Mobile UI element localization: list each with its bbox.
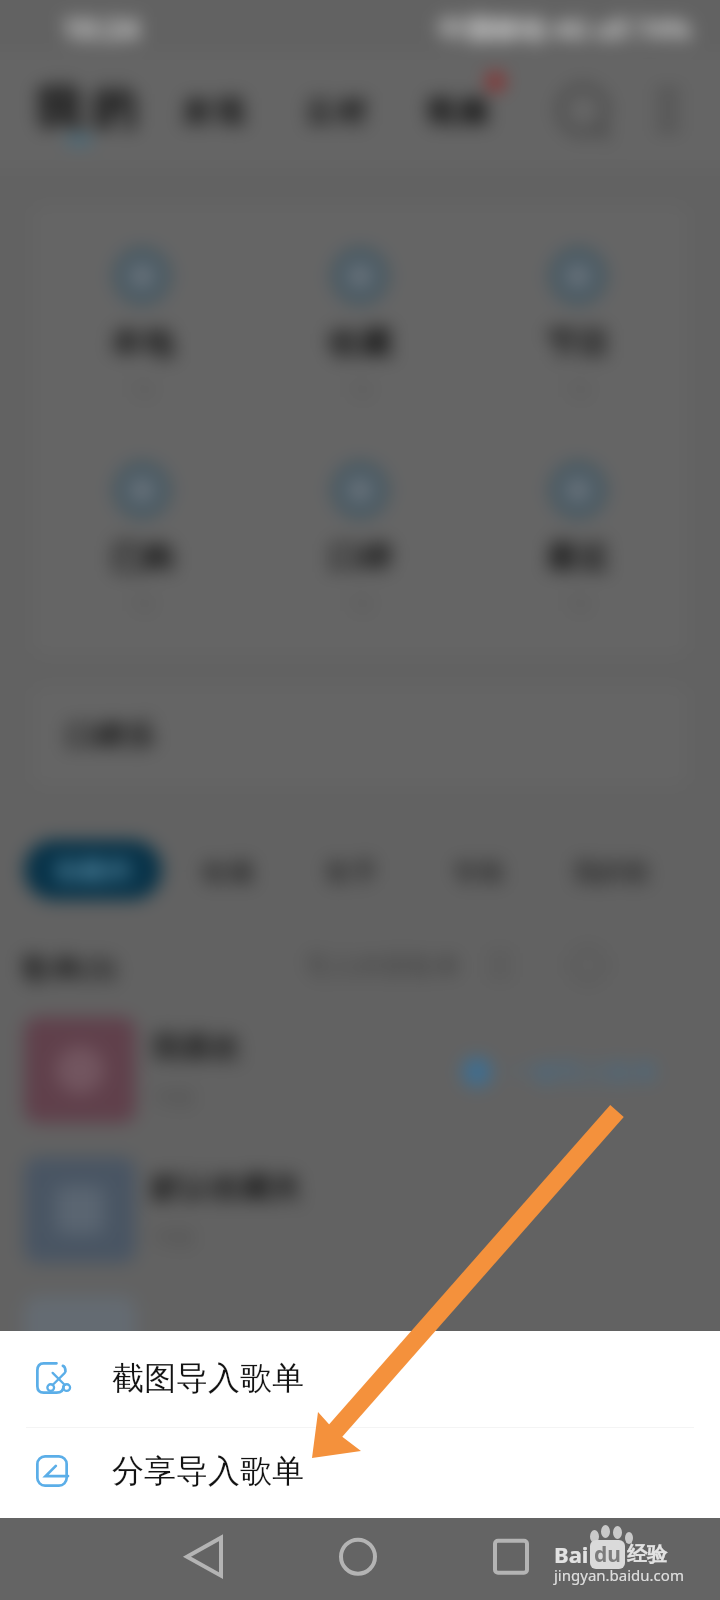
button[interactable]: Back xyxy=(0,1518,240,1600)
button[interactable]: 收藏 xyxy=(186,842,270,903)
staticText: 口碑 xyxy=(328,537,392,577)
staticText: 云村 xyxy=(303,93,369,131)
button[interactable]: Recent apps xyxy=(480,1518,720,1600)
staticText: 歌手 xyxy=(326,856,378,889)
button[interactable]: 专辑 xyxy=(436,842,520,903)
staticText: 节目 xyxy=(546,323,610,363)
button[interactable]: 视频 xyxy=(412,66,502,158)
staticText: 口碑乐 xyxy=(65,717,155,755)
button[interactable]: 我的歌 xyxy=(557,842,667,903)
button[interactable]: 我喜欢 xyxy=(0,1000,720,1140)
button[interactable]: 默认收藏夹 xyxy=(0,1140,720,1280)
staticText: 最近 xyxy=(546,537,610,577)
staticText: 创建的 xyxy=(54,854,132,887)
button[interactable]: 云村 xyxy=(291,66,381,158)
button[interactable]: 截图导入歌单 xyxy=(0,1331,720,1425)
staticText: Bai xyxy=(554,1539,589,1569)
staticText: 收藏 xyxy=(328,323,392,363)
button[interactable]: 口碑 xyxy=(251,419,469,633)
button[interactable]: 口碑乐 xyxy=(33,686,687,786)
staticText: 经验 xyxy=(627,1542,667,1567)
staticText: du xyxy=(594,1540,621,1569)
staticText: 收藏 xyxy=(202,856,254,889)
staticText: jingyan.baidu.com xyxy=(554,1565,684,1585)
button[interactable]: 本地 xyxy=(33,205,251,419)
staticText: 已购 xyxy=(110,537,174,577)
staticText: 我喜欢 xyxy=(151,1029,241,1067)
staticText: 中国移动 4G ull 74% xyxy=(438,10,691,47)
button[interactable]: 已购 xyxy=(33,419,251,633)
staticText: 我的歌 xyxy=(573,856,651,889)
staticText: 发现 xyxy=(180,93,246,131)
button[interactable]: 我的 xyxy=(18,56,154,162)
button[interactable]: 最近 xyxy=(469,419,687,633)
staticText: 默认收藏夹 xyxy=(151,1169,301,1207)
button[interactable]: 创建的 xyxy=(24,840,162,900)
staticText: 我的 xyxy=(30,80,142,138)
button[interactable]: 收藏 xyxy=(251,205,469,419)
button[interactable]: Home xyxy=(240,1518,480,1600)
button[interactable]: 节目 xyxy=(469,205,687,419)
staticText: 截图导入歌单 xyxy=(112,1358,304,1398)
staticText: 10:24 xyxy=(62,8,140,49)
staticText: 视频 xyxy=(424,93,490,131)
button[interactable]: 一键导入歌单 xyxy=(456,1046,664,1098)
staticText: 歌单(3) xyxy=(22,948,117,988)
staticText: 专辑 xyxy=(452,856,504,889)
button[interactable]: 分享导入歌单 xyxy=(0,1424,720,1518)
staticText: 分享导入歌单 xyxy=(112,1451,304,1491)
staticText: 本地 xyxy=(110,323,174,363)
button[interactable]: 歌手 xyxy=(310,842,394,903)
button[interactable]: 发现 xyxy=(168,66,258,158)
